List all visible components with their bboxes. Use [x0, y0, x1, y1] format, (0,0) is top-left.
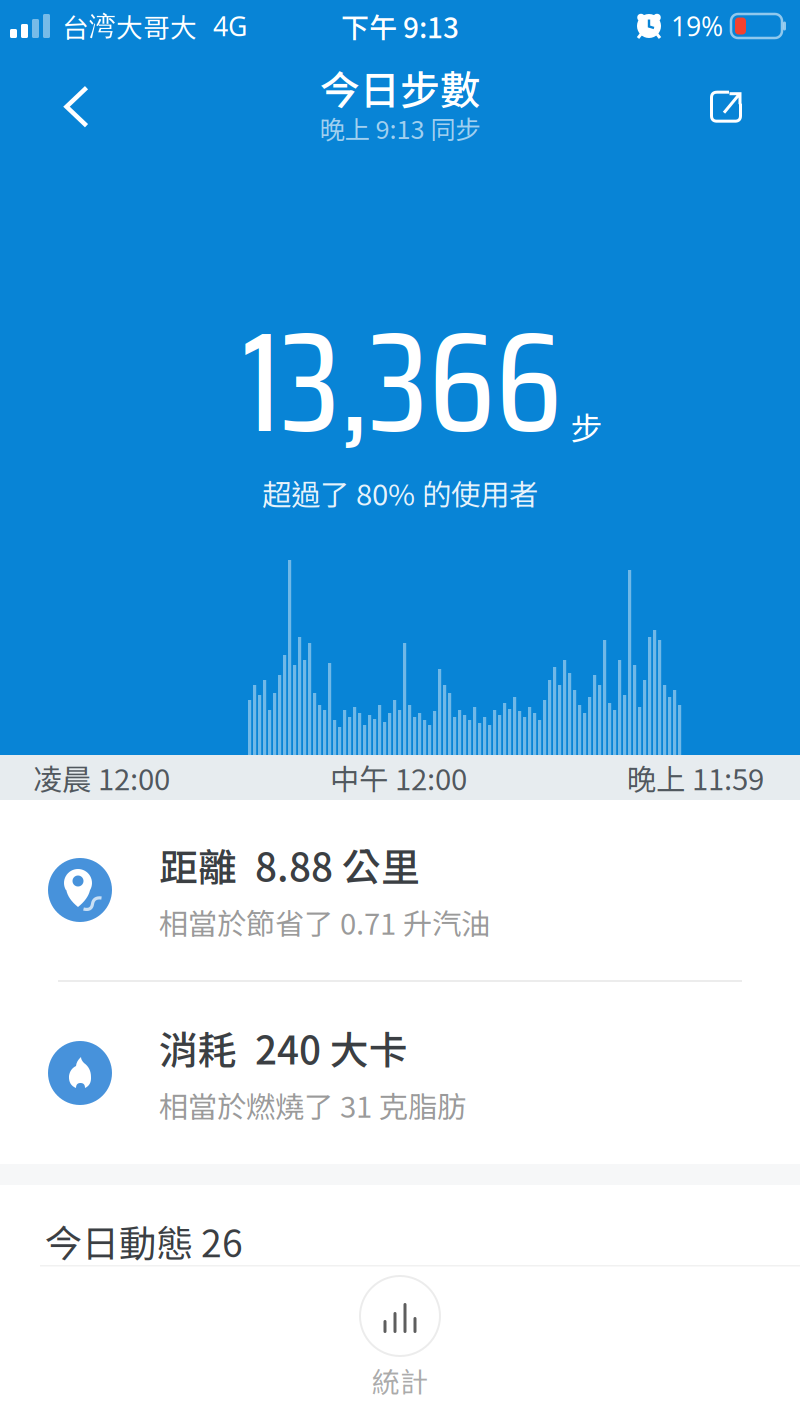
staticText: 步	[570, 403, 602, 449]
staticText: 19%	[671, 8, 723, 44]
staticText: 相當於節省了 0.71 升汽油	[159, 901, 490, 943]
staticText: 相當於燃燒了 31 克脂肪	[159, 1084, 466, 1126]
staticText: 台湾大哥大	[62, 7, 197, 45]
staticText: 中午 12:00	[330, 756, 467, 799]
button[interactable]: Share	[710, 55, 800, 123]
staticText: 晚上 11:59	[627, 756, 764, 799]
staticText: 4G	[213, 8, 247, 44]
staticText: 今日步數	[320, 59, 480, 117]
staticText: 凌晨 12:00	[33, 756, 170, 799]
staticText: 消耗 240 大卡	[159, 1020, 408, 1076]
staticText: 今日動態 26	[45, 1214, 243, 1268]
staticText: 統計	[372, 1360, 428, 1400]
staticText: 超過了 80% 的使用者	[262, 471, 538, 514]
staticText: 距離 8.88 公里	[159, 837, 420, 893]
staticText: 13,366	[241, 272, 562, 492]
button[interactable]: 統計	[360, 1276, 440, 1400]
staticText: 下午 9:13	[341, 6, 459, 46]
staticText: 晚上 9:13 同步	[319, 110, 480, 146]
button[interactable]: Back	[0, 55, 89, 128]
